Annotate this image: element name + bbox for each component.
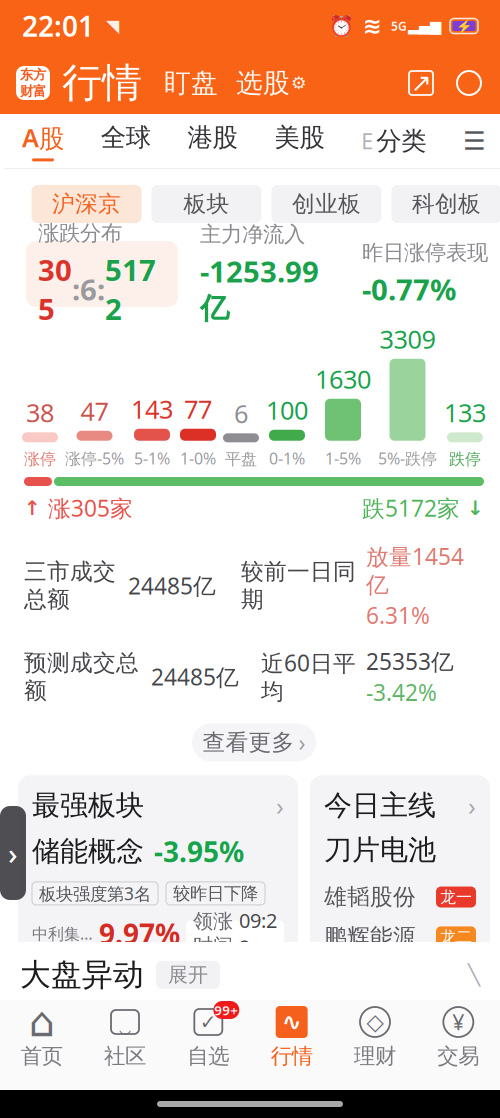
staticText: 龙二 [440, 927, 472, 947]
staticText: 主力净流入 [200, 221, 305, 248]
staticText: -0.77% [362, 270, 456, 309]
staticText: 行情 [271, 1043, 313, 1069]
staticText: 25353亿 [366, 646, 454, 676]
button[interactable]: 沪深京 [31, 185, 141, 223]
staticText: ☰ [463, 127, 486, 155]
button[interactable]: 今日主线 [310, 775, 490, 955]
staticText: 领涨时间 [193, 909, 233, 958]
staticText: 涨停-5% [65, 448, 124, 469]
button[interactable]: ¥ [417, 1006, 500, 1069]
button[interactable]: E [361, 125, 426, 156]
button[interactable]: 全球 [101, 122, 151, 160]
staticText: 盯盘 [164, 67, 218, 99]
staticText: 行情 [62, 58, 142, 107]
staticText: 放量1454亿 [366, 541, 464, 599]
staticText: ⏰ [329, 15, 354, 37]
staticText: ≋ [363, 13, 382, 39]
staticText: 展开 [168, 963, 208, 987]
button[interactable]: 选股 [218, 67, 307, 99]
button[interactable]: 查看更多 [192, 723, 316, 761]
button[interactable]: 板块 [151, 185, 261, 223]
staticText: 首页 [21, 1043, 63, 1069]
staticText: 刀片电池 [324, 833, 436, 867]
staticText: 99+ [214, 1001, 238, 1019]
button[interactable]: 分享 [406, 68, 436, 98]
button[interactable]: 东方财富 [16, 66, 50, 100]
button[interactable]: 美股 [274, 122, 324, 160]
button[interactable]: 最强板块 [18, 775, 298, 955]
button[interactable]: 更多 [463, 127, 486, 155]
button[interactable]: ◇ [333, 1006, 417, 1069]
staticText: 100 [266, 393, 308, 427]
staticText: 涨305家 [41, 493, 133, 523]
staticText: ∿ [282, 1008, 302, 1036]
button[interactable]: ⌂ [0, 1006, 83, 1069]
staticText: ⌂ [29, 998, 55, 1045]
staticText: 38 [26, 396, 54, 429]
staticText: ↓ [467, 497, 484, 519]
button[interactable]: 展开侧边栏 [0, 806, 26, 900]
button[interactable]: ✓ [167, 1006, 250, 1069]
staticText: ↗ [410, 69, 431, 97]
staticText: 143 [131, 392, 173, 426]
staticText: 24485亿 [116, 571, 216, 601]
staticText: 3309 [379, 322, 435, 356]
staticText: 交易 [437, 1043, 479, 1069]
staticText: ✓ [200, 1011, 217, 1033]
staticText: -1253.99亿 [200, 252, 319, 327]
staticText: ◇ [366, 1009, 383, 1035]
staticText: 近60日平均 [261, 648, 356, 706]
staticText: 理财 [354, 1043, 396, 1069]
staticText: 美股 [274, 122, 324, 153]
staticText: 09:22 [239, 907, 277, 960]
staticText: 财富 [20, 83, 46, 99]
staticText: 跌5172家 [362, 493, 467, 523]
staticText: 涨停 [24, 449, 56, 469]
staticText: 预测成交总额 [24, 649, 139, 705]
button[interactable]: 港股 [188, 122, 238, 160]
staticText: 港股 [188, 122, 238, 153]
staticText: 9.97% [99, 915, 180, 952]
staticText: 较昨日下降 [173, 883, 258, 904]
staticText: ╲ [468, 963, 480, 986]
staticText: 大盘异动 [20, 956, 144, 994]
staticText: 1-5% [325, 448, 361, 469]
staticText: ◥ [94, 16, 119, 36]
staticText: 5-1% [134, 448, 170, 469]
staticText: 0-1% [269, 448, 305, 469]
button[interactable]: 创业板 [271, 185, 381, 223]
staticText: 全球 [101, 122, 151, 153]
button[interactable]: 盯盘 [142, 67, 218, 99]
staticText: ⚡ [455, 18, 472, 34]
staticText: 社区 [104, 1043, 146, 1069]
button[interactable]: 行情 [50, 58, 142, 107]
button[interactable]: 科创板 [391, 185, 500, 223]
staticText: 5172 [105, 250, 156, 328]
staticText: 沪深京 [52, 190, 121, 218]
staticText: 今日主线 [324, 788, 436, 823]
staticText: 东方 [20, 67, 46, 83]
staticText: -3.42% [366, 677, 437, 707]
staticText: 133 [444, 396, 486, 429]
staticText: 储能概念 [32, 834, 144, 868]
button[interactable]: A股 [22, 121, 64, 161]
staticText: A股 [22, 121, 64, 154]
button[interactable]: ∿ [250, 1006, 333, 1069]
staticText: ¥ [452, 1008, 464, 1036]
staticText: 涨跌分布 [38, 220, 122, 246]
staticText: › [468, 789, 476, 822]
staticText: 1-0% [180, 448, 216, 469]
staticText: 较前一日同期 [241, 558, 356, 613]
staticText: 6 [234, 397, 248, 430]
staticText: ▂▄▆ [408, 18, 441, 34]
staticText: 自选 [187, 1043, 229, 1069]
staticText: 板块 [183, 190, 229, 218]
staticText: 三市成交总额 [24, 558, 116, 613]
button[interactable]: 搜索 [436, 68, 484, 98]
staticText: 5%-跌停 [378, 448, 437, 469]
button[interactable]: ‿ [83, 1006, 167, 1069]
staticText: 305 [38, 250, 72, 328]
staticText: 选股 [236, 67, 290, 99]
staticText: 分类 [376, 125, 426, 156]
staticText: 平盘 [225, 449, 257, 469]
